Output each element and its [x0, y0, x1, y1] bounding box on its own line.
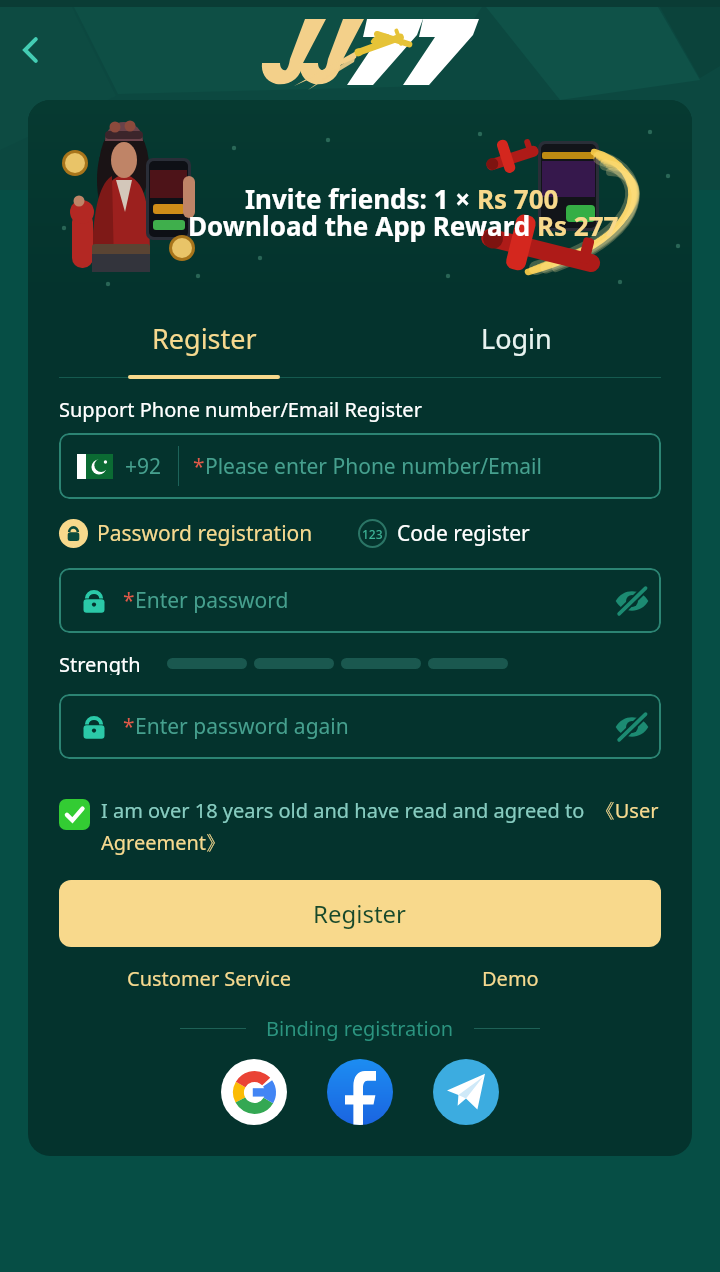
staticText: Strength [59, 651, 141, 675]
staticText: Support Phone number/Email Register [59, 396, 422, 423]
staticText: +92 [125, 452, 162, 481]
staticText: Please enter Phone number/Email [205, 452, 542, 481]
staticText: * [193, 452, 205, 481]
staticText: Register [313, 897, 407, 930]
staticText: Register [152, 320, 257, 357]
staticText: Enter password again [135, 712, 349, 741]
button[interactable]: I am over 18 checkbox [59, 799, 90, 830]
button[interactable]: Show password [607, 576, 657, 626]
button[interactable]: Show password [607, 702, 657, 752]
button[interactable]: 123 [358, 519, 530, 548]
button[interactable]: Sign in with Facebook [327, 1059, 393, 1125]
button[interactable]: * [59, 568, 661, 633]
button[interactable]: Login [456, 313, 576, 363]
staticText: Password registration [97, 519, 313, 548]
button[interactable]: I am over 18 years old and have read and… [101, 797, 661, 856]
staticText: Invite friends: 1 × Rs 700 [245, 181, 559, 216]
staticText: Code register [397, 519, 530, 548]
staticText: Binding registration [266, 1015, 454, 1042]
staticText: Enter password [135, 586, 289, 615]
staticText: Download the App Reward Rs 277 [188, 208, 619, 243]
button[interactable]: Customer Service [127, 965, 292, 992]
staticText: 123 [362, 526, 383, 542]
staticText: * [123, 712, 135, 741]
staticText: * [123, 586, 135, 615]
button[interactable]: Password registration [59, 519, 313, 548]
button[interactable]: Sign in with Telegram [433, 1059, 499, 1125]
staticText: Login [481, 320, 552, 357]
button[interactable]: +92 [59, 433, 661, 499]
button[interactable]: * [59, 694, 661, 759]
button[interactable]: Back [4, 23, 58, 77]
button[interactable]: Sign in with Google [221, 1059, 287, 1125]
button[interactable]: Register [59, 880, 661, 947]
button[interactable]: Register [128, 313, 280, 363]
button[interactable]: Demo [482, 965, 539, 992]
